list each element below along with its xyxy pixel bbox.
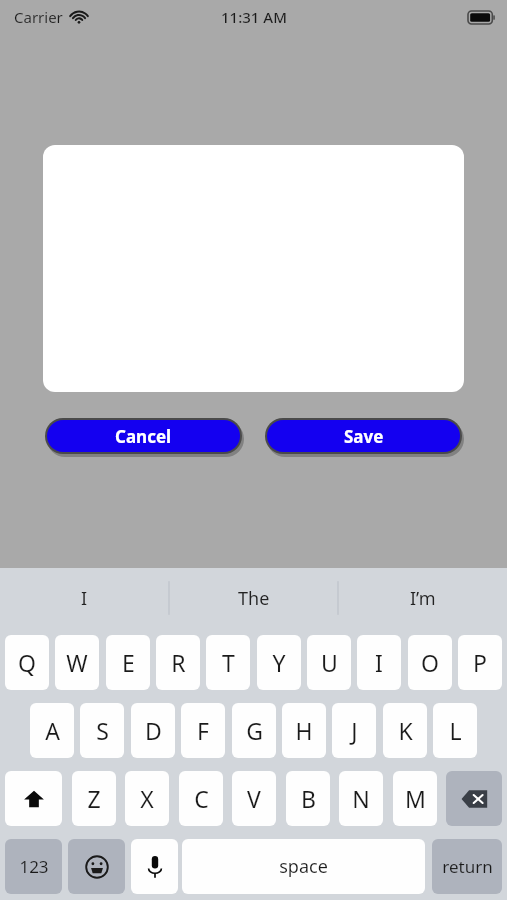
staticText: I’m	[410, 586, 436, 611]
staticText: F	[197, 715, 209, 746]
button[interactable]: Z	[72, 771, 116, 826]
staticText: I	[81, 586, 88, 611]
staticText: space	[279, 854, 328, 879]
button[interactable]: G	[232, 703, 276, 758]
staticText: I	[375, 647, 383, 678]
staticText: A	[45, 715, 60, 746]
staticText: U	[321, 647, 338, 678]
button[interactable]: D	[131, 703, 175, 758]
button[interactable]: W	[55, 635, 99, 690]
button[interactable]: A	[30, 703, 74, 758]
staticText: P	[473, 647, 487, 678]
button[interactable]: M	[393, 771, 437, 826]
staticText: S	[96, 715, 109, 746]
button[interactable]: I	[0, 568, 169, 628]
staticText: O	[421, 647, 439, 678]
staticText: B	[301, 783, 316, 814]
button[interactable]: Save	[267, 420, 460, 452]
button[interactable]: Shift	[5, 771, 62, 826]
staticText: Cancel	[115, 425, 172, 448]
button[interactable]: Y	[257, 635, 301, 690]
button[interactable]: B	[286, 771, 330, 826]
staticText: K	[398, 715, 413, 746]
button[interactable]: I	[357, 635, 401, 690]
button[interactable]: X	[125, 771, 169, 826]
staticText: 123	[19, 855, 49, 878]
staticText: V	[247, 783, 261, 814]
button[interactable]: U	[307, 635, 351, 690]
button[interactable]: Backspace	[446, 771, 502, 826]
staticText: T	[222, 647, 235, 678]
staticText: R	[171, 647, 186, 678]
button[interactable]: O	[408, 635, 452, 690]
staticText: M	[405, 783, 426, 814]
button[interactable]: V	[232, 771, 276, 826]
button[interactable]: K	[383, 703, 427, 758]
button[interactable]: F	[181, 703, 225, 758]
button[interactable]: I’m	[338, 568, 507, 628]
staticText: C	[194, 783, 209, 814]
button[interactable]: H	[282, 703, 326, 758]
button[interactable]: Cancel	[47, 420, 240, 452]
button[interactable]: L	[433, 703, 477, 758]
staticText: D	[145, 715, 162, 746]
staticText: X	[140, 783, 154, 814]
button[interactable]: Emoji	[68, 839, 125, 894]
staticText: Z	[87, 783, 101, 814]
staticText: W	[66, 647, 88, 678]
button[interactable]: Dictate	[131, 839, 178, 894]
staticText: The	[238, 586, 270, 611]
button[interactable]: space	[182, 839, 425, 894]
button[interactable]: The	[169, 568, 338, 628]
staticText: E	[122, 647, 135, 678]
button[interactable]: C	[179, 771, 223, 826]
staticText: Y	[272, 647, 286, 678]
button[interactable]: R	[156, 635, 200, 690]
button[interactable]: N	[339, 771, 383, 826]
staticText: H	[295, 715, 313, 746]
button[interactable]: E	[106, 635, 150, 690]
staticText: Save	[344, 425, 384, 448]
button[interactable]: P	[458, 635, 502, 690]
button[interactable]: return	[432, 839, 502, 894]
button[interactable]: Q	[5, 635, 49, 690]
staticText: Carrier	[14, 7, 63, 27]
staticText: J	[351, 715, 358, 746]
staticText: L	[449, 715, 462, 746]
button[interactable]: S	[80, 703, 124, 758]
staticText: 11:31 AM	[221, 7, 287, 27]
button[interactable]: 123	[5, 839, 62, 894]
button[interactable]: J	[332, 703, 376, 758]
button[interactable]: T	[206, 635, 250, 690]
staticText: Q	[18, 647, 36, 678]
staticText: G	[246, 715, 263, 746]
staticText: N	[352, 783, 370, 814]
staticText: return	[442, 855, 493, 878]
